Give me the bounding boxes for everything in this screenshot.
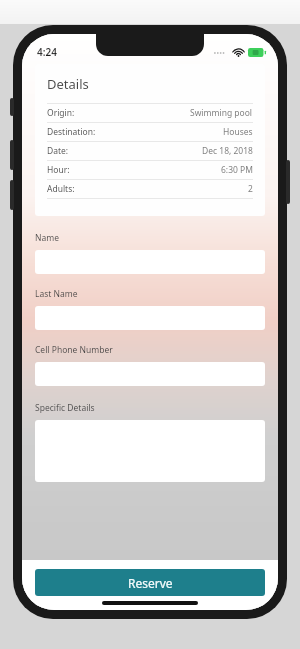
staticText: Adults: bbox=[47, 183, 75, 195]
staticText: Swimming pool bbox=[190, 107, 253, 119]
staticText: 4:24 bbox=[37, 45, 57, 59]
staticText: 6:30 PM bbox=[221, 164, 253, 176]
button[interactable]: Reserve bbox=[35, 569, 265, 596]
staticText: Specific Details bbox=[35, 402, 95, 414]
staticText: Details bbox=[47, 75, 89, 93]
staticText: Date: bbox=[47, 145, 69, 157]
staticText: Dec 18, 2018 bbox=[202, 145, 253, 157]
staticText: 2 bbox=[248, 183, 253, 195]
staticText: Last Name bbox=[35, 288, 78, 300]
staticText: Cell Phone Number bbox=[35, 344, 113, 356]
staticText: Houses bbox=[223, 126, 253, 138]
staticText: Origin: bbox=[47, 107, 75, 119]
staticText: Destination: bbox=[47, 126, 96, 138]
staticText: Hour: bbox=[47, 164, 70, 176]
staticText: Name bbox=[35, 232, 59, 244]
staticText: Reserve bbox=[128, 575, 173, 591]
